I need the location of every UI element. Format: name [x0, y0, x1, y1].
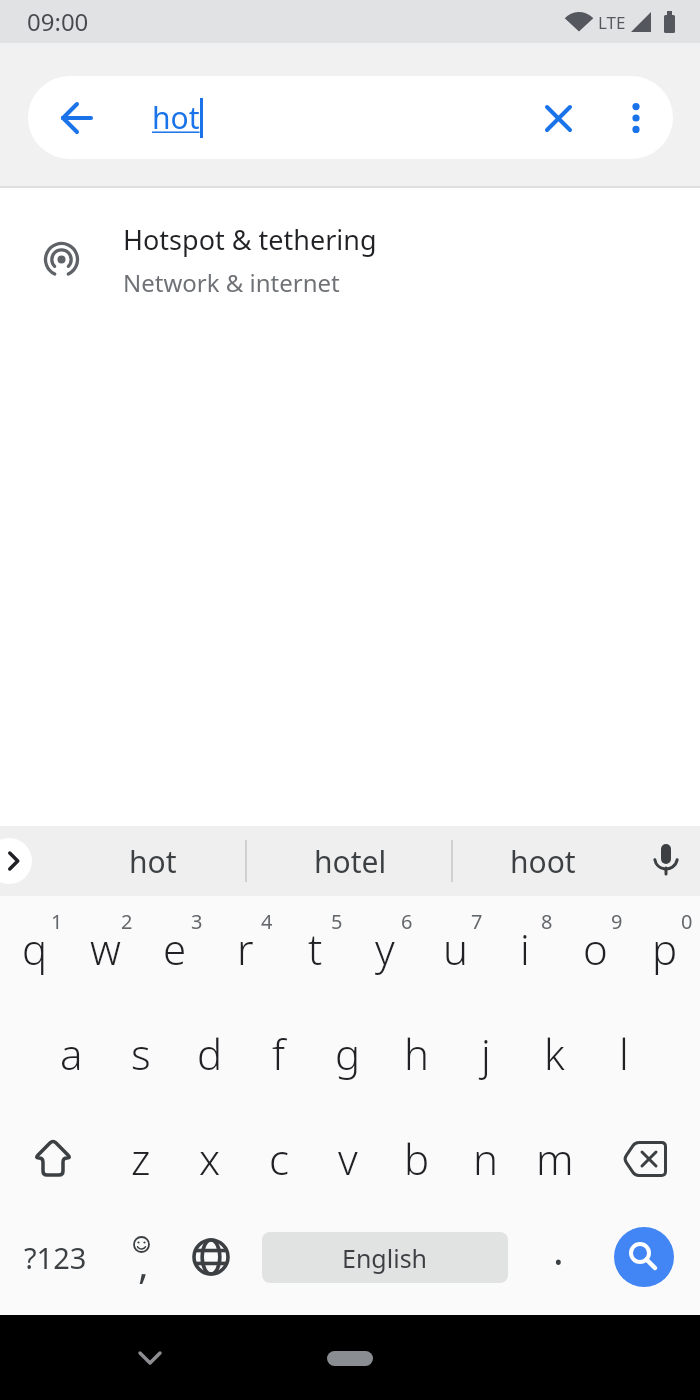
staticText: ?123	[24, 1238, 87, 1277]
staticText: a	[60, 1025, 83, 1082]
staticText: LTE	[598, 11, 626, 34]
staticText: .	[553, 1222, 564, 1276]
button[interactable]: Hotspot & tethering	[0, 188, 700, 316]
button[interactable]: hoot	[470, 826, 615, 896]
button[interactable]	[589, 1106, 700, 1211]
staticText: r	[237, 920, 254, 977]
button[interactable]	[120, 1328, 180, 1388]
button[interactable]: p	[630, 896, 700, 1001]
staticText: t	[308, 920, 323, 977]
staticText: d	[197, 1025, 223, 1082]
button[interactable]: y	[350, 896, 420, 1001]
button[interactable]: k	[520, 1001, 589, 1106]
button[interactable]: g	[313, 1001, 382, 1106]
button[interactable]	[0, 838, 32, 884]
staticText: x	[199, 1130, 221, 1187]
staticText: 09:00	[27, 5, 89, 38]
button[interactable]: o	[560, 896, 630, 1001]
staticText: English	[342, 1241, 428, 1275]
staticText: 1	[51, 908, 63, 935]
button[interactable]: h	[382, 1001, 451, 1106]
button[interactable]: English	[262, 1232, 508, 1283]
staticText: 8	[541, 908, 553, 935]
staticText: q	[22, 920, 48, 977]
button[interactable]	[614, 1227, 674, 1287]
button[interactable]	[536, 96, 580, 140]
button[interactable]	[327, 1351, 373, 1366]
staticText: c	[269, 1130, 289, 1187]
staticText: k	[544, 1025, 565, 1082]
staticText: 4	[261, 908, 273, 935]
button[interactable]: f	[244, 1001, 313, 1106]
staticText: 0	[681, 908, 693, 935]
staticText: p	[652, 920, 678, 977]
button[interactable]: .	[530, 1212, 586, 1302]
staticText: 2	[121, 908, 133, 935]
button[interactable]: u	[420, 896, 490, 1001]
button[interactable]: z	[106, 1106, 175, 1211]
button[interactable]	[643, 838, 689, 884]
staticText: y	[375, 920, 395, 977]
staticText: j	[481, 1025, 491, 1082]
staticText: hot	[152, 97, 200, 138]
button[interactable]	[178, 1212, 244, 1302]
staticText: 7	[471, 908, 483, 935]
button[interactable]: q	[0, 896, 70, 1001]
staticText: v	[338, 1130, 358, 1187]
staticText: hoot	[510, 841, 576, 882]
staticText: e	[163, 920, 187, 977]
staticText: n	[473, 1130, 498, 1187]
staticText: f	[272, 1025, 285, 1082]
staticText: w	[90, 920, 121, 977]
button[interactable]	[0, 1106, 106, 1211]
staticText: 9	[611, 908, 623, 935]
button[interactable]: j	[451, 1001, 520, 1106]
button[interactable]: l	[589, 1001, 658, 1106]
staticText: z	[131, 1130, 151, 1187]
staticText: 5	[331, 908, 343, 935]
button[interactable]: v	[313, 1106, 382, 1211]
button[interactable]: r	[210, 896, 280, 1001]
button[interactable]: b	[382, 1106, 451, 1211]
button[interactable]: d	[175, 1001, 244, 1106]
staticText: g	[335, 1025, 361, 1082]
button[interactable]: x	[175, 1106, 244, 1211]
staticText: hot	[129, 841, 177, 882]
staticText: 6	[401, 908, 413, 935]
staticText: i	[520, 920, 530, 977]
button[interactable]: s	[106, 1001, 175, 1106]
button[interactable]: a	[37, 1001, 106, 1106]
button[interactable]: ?123	[12, 1217, 98, 1297]
staticText: o	[583, 920, 608, 977]
button[interactable]: c	[244, 1106, 313, 1211]
button[interactable]	[60, 101, 94, 135]
staticText: m	[536, 1130, 574, 1187]
button[interactable]: e	[140, 896, 210, 1001]
staticText: ,	[138, 1236, 149, 1290]
staticText: s	[131, 1025, 151, 1082]
staticText: h	[404, 1025, 429, 1082]
staticText: Network & internet	[123, 266, 340, 299]
staticText: l	[619, 1025, 629, 1082]
button[interactable]: ,	[110, 1212, 172, 1302]
button[interactable]: m	[520, 1106, 589, 1211]
staticText: b	[404, 1130, 430, 1187]
button[interactable]	[618, 100, 654, 136]
staticText: 3	[191, 908, 203, 935]
button[interactable]: hot	[0, 826, 245, 896]
staticText: u	[443, 920, 468, 977]
button[interactable]: n	[451, 1106, 520, 1211]
button[interactable]: w	[70, 896, 140, 1001]
staticText: Hotspot & tethering	[123, 221, 377, 258]
button[interactable]: i	[490, 896, 560, 1001]
button[interactable]: hotel	[225, 826, 475, 896]
button[interactable]: t	[280, 896, 350, 1001]
staticText: hotel	[314, 841, 387, 882]
